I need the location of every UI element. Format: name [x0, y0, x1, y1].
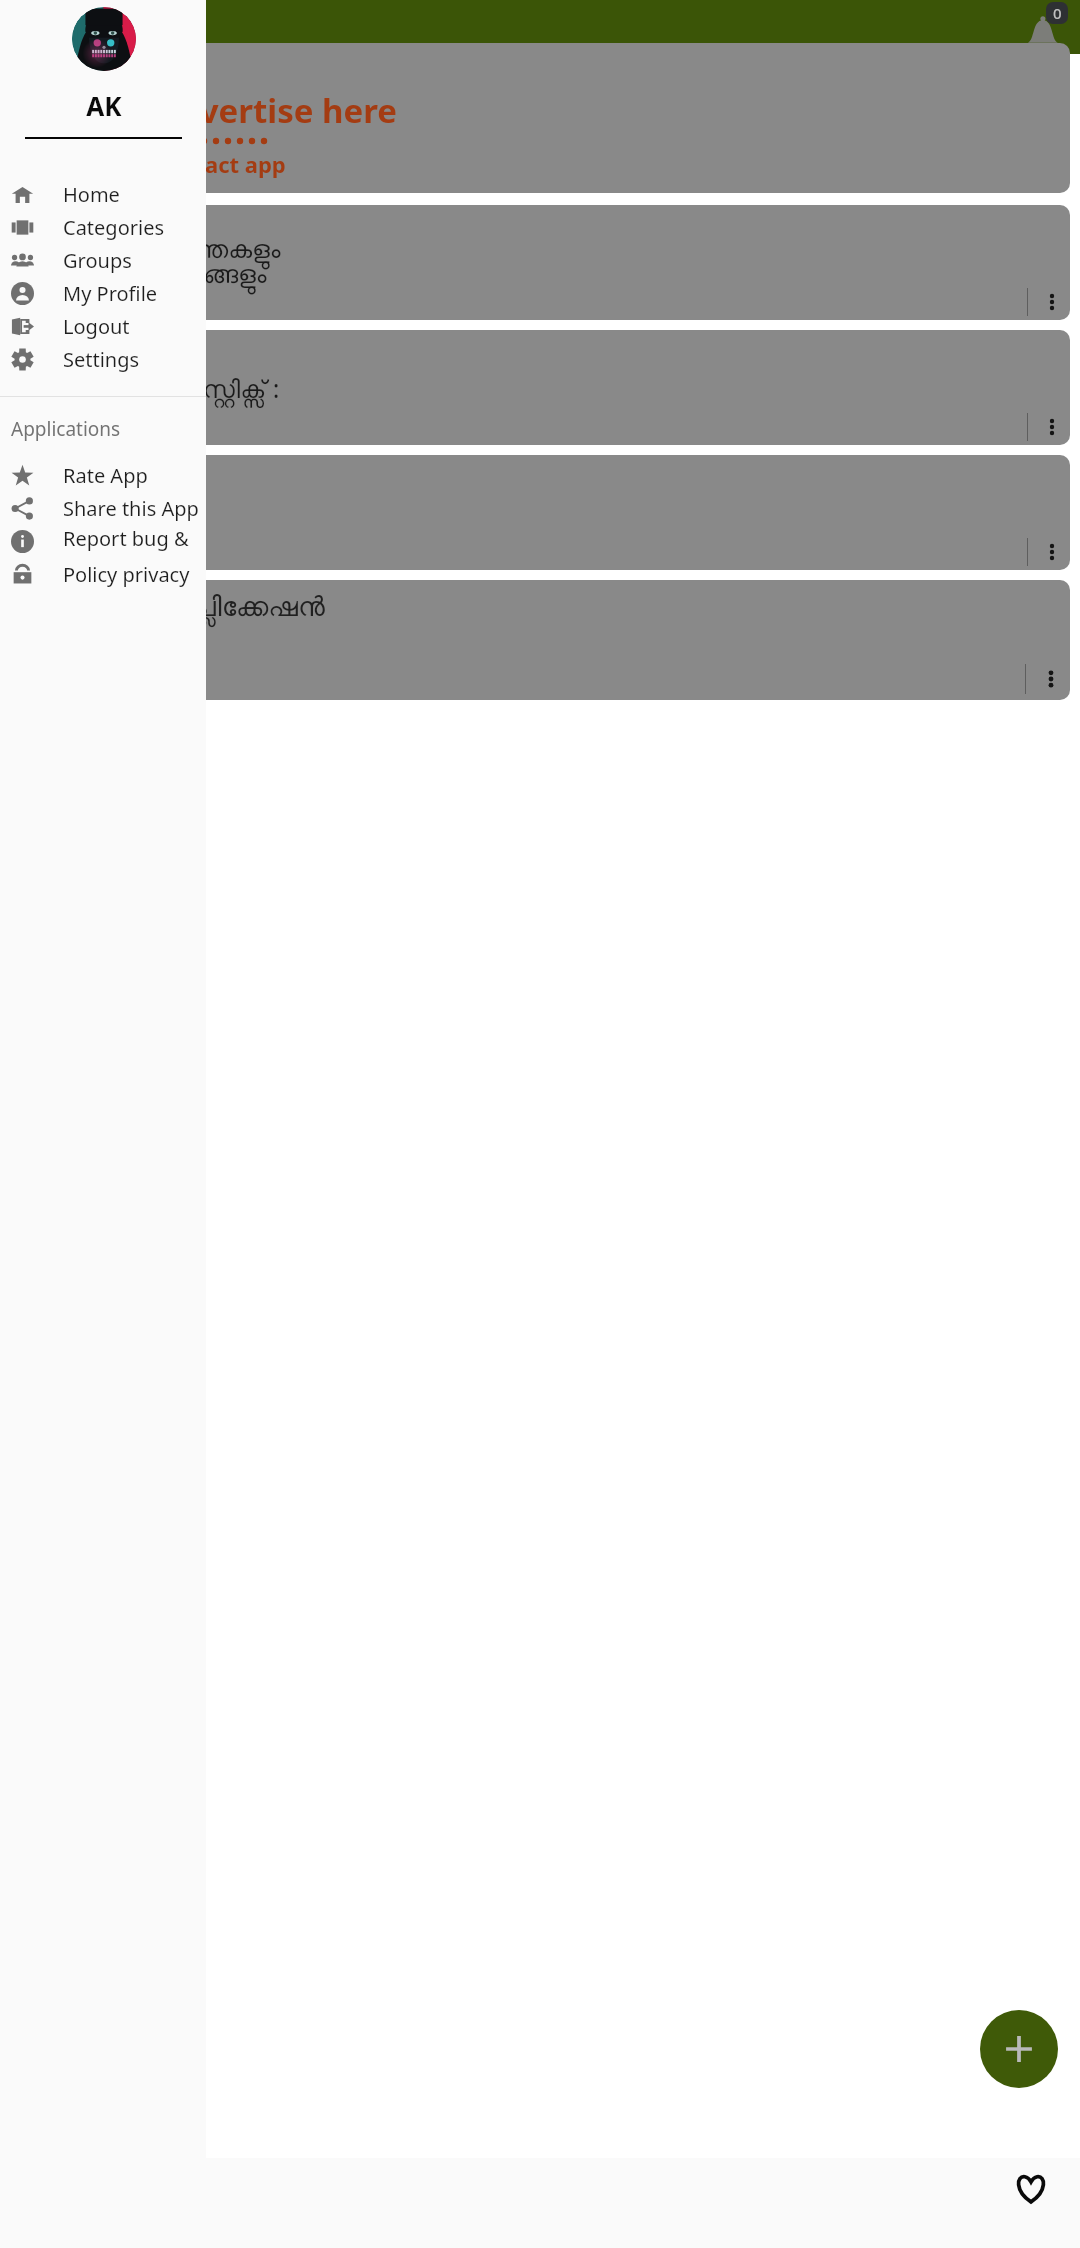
button[interactable]: My Profile	[0, 277, 206, 310]
staticText: Rate App	[63, 462, 148, 489]
button[interactable]: Add	[980, 2010, 1058, 2088]
button[interactable]: Report bug & Help	[0, 525, 206, 558]
staticText: Settings	[63, 346, 140, 373]
button[interactable]: Notifications	[1020, 8, 1064, 52]
staticText: Logout	[63, 313, 130, 340]
staticText: Share this App	[63, 495, 199, 522]
staticText: My Profile	[63, 280, 158, 307]
staticText: Advertise here	[156, 88, 397, 133]
staticText: contact app	[156, 149, 286, 179]
button[interactable]	[6, 455, 1070, 570]
button[interactable]: Settings	[0, 343, 206, 376]
button[interactable]: Profile photo	[72, 7, 136, 71]
button[interactable]: More options	[1040, 668, 1062, 690]
button[interactable]: സ്റ്റാറ്റിസ്റ്റിക്സ് :	[6, 330, 1070, 445]
staticText: Applications	[11, 416, 121, 442]
button[interactable]: Groups	[0, 244, 206, 277]
staticText: അപ്ലിക്കേഷൻ	[156, 594, 325, 621]
button[interactable]: Logout	[0, 310, 206, 343]
staticText: Groups	[63, 247, 132, 274]
staticText: AK	[86, 88, 122, 123]
staticText: വാർത്തകളും	[136, 238, 281, 263]
button[interactable]: Categories	[0, 211, 206, 244]
staticText: വിവരങ്ങളും	[136, 263, 267, 288]
button[interactable]: Favorites	[1008, 2166, 1054, 2212]
button[interactable]: Rate App	[0, 459, 206, 492]
staticText: 0	[1053, 3, 1062, 23]
button[interactable]: വാർത്തകളും	[6, 205, 1070, 320]
button[interactable]: Home	[0, 178, 206, 211]
staticText: Policy privacy	[63, 561, 190, 588]
button[interactable]: Share this App	[0, 492, 206, 525]
button[interactable]: Policy privacy	[0, 558, 206, 591]
staticText: Report bug & Help	[63, 525, 206, 558]
staticText: Categories	[63, 214, 165, 241]
staticText: സ്റ്റാറ്റിസ്റ്റിക്സ് :	[136, 371, 280, 405]
staticText: Home	[63, 181, 120, 208]
